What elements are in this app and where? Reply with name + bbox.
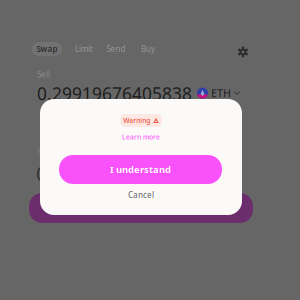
button[interactable]: Learn more <box>40 130 242 144</box>
staticText: Buy <box>141 44 155 54</box>
staticText: Buy <box>37 146 51 157</box>
staticText: Cancel <box>128 190 154 200</box>
staticText: Sell <box>37 69 50 80</box>
button[interactable]: I understand <box>59 155 222 184</box>
staticText: ETH <box>211 86 231 100</box>
button[interactable]: Settings <box>235 44 251 60</box>
staticText: Learn more <box>122 133 160 141</box>
staticText: Swap <box>36 44 57 54</box>
button[interactable]: Buy <box>133 42 163 56</box>
staticText: 0 <box>36 160 47 187</box>
staticText: Limit <box>75 44 93 54</box>
button[interactable]: Limit <box>69 42 99 56</box>
button[interactable]: Swap <box>32 42 62 56</box>
button[interactable]: Cancel <box>111 187 171 203</box>
button[interactable]: Send <box>101 42 131 56</box>
staticText: Warning <box>123 116 150 125</box>
staticText: I understand <box>110 163 171 176</box>
staticText: 0.29919676405838 <box>37 82 192 105</box>
staticText: Send <box>106 44 125 54</box>
